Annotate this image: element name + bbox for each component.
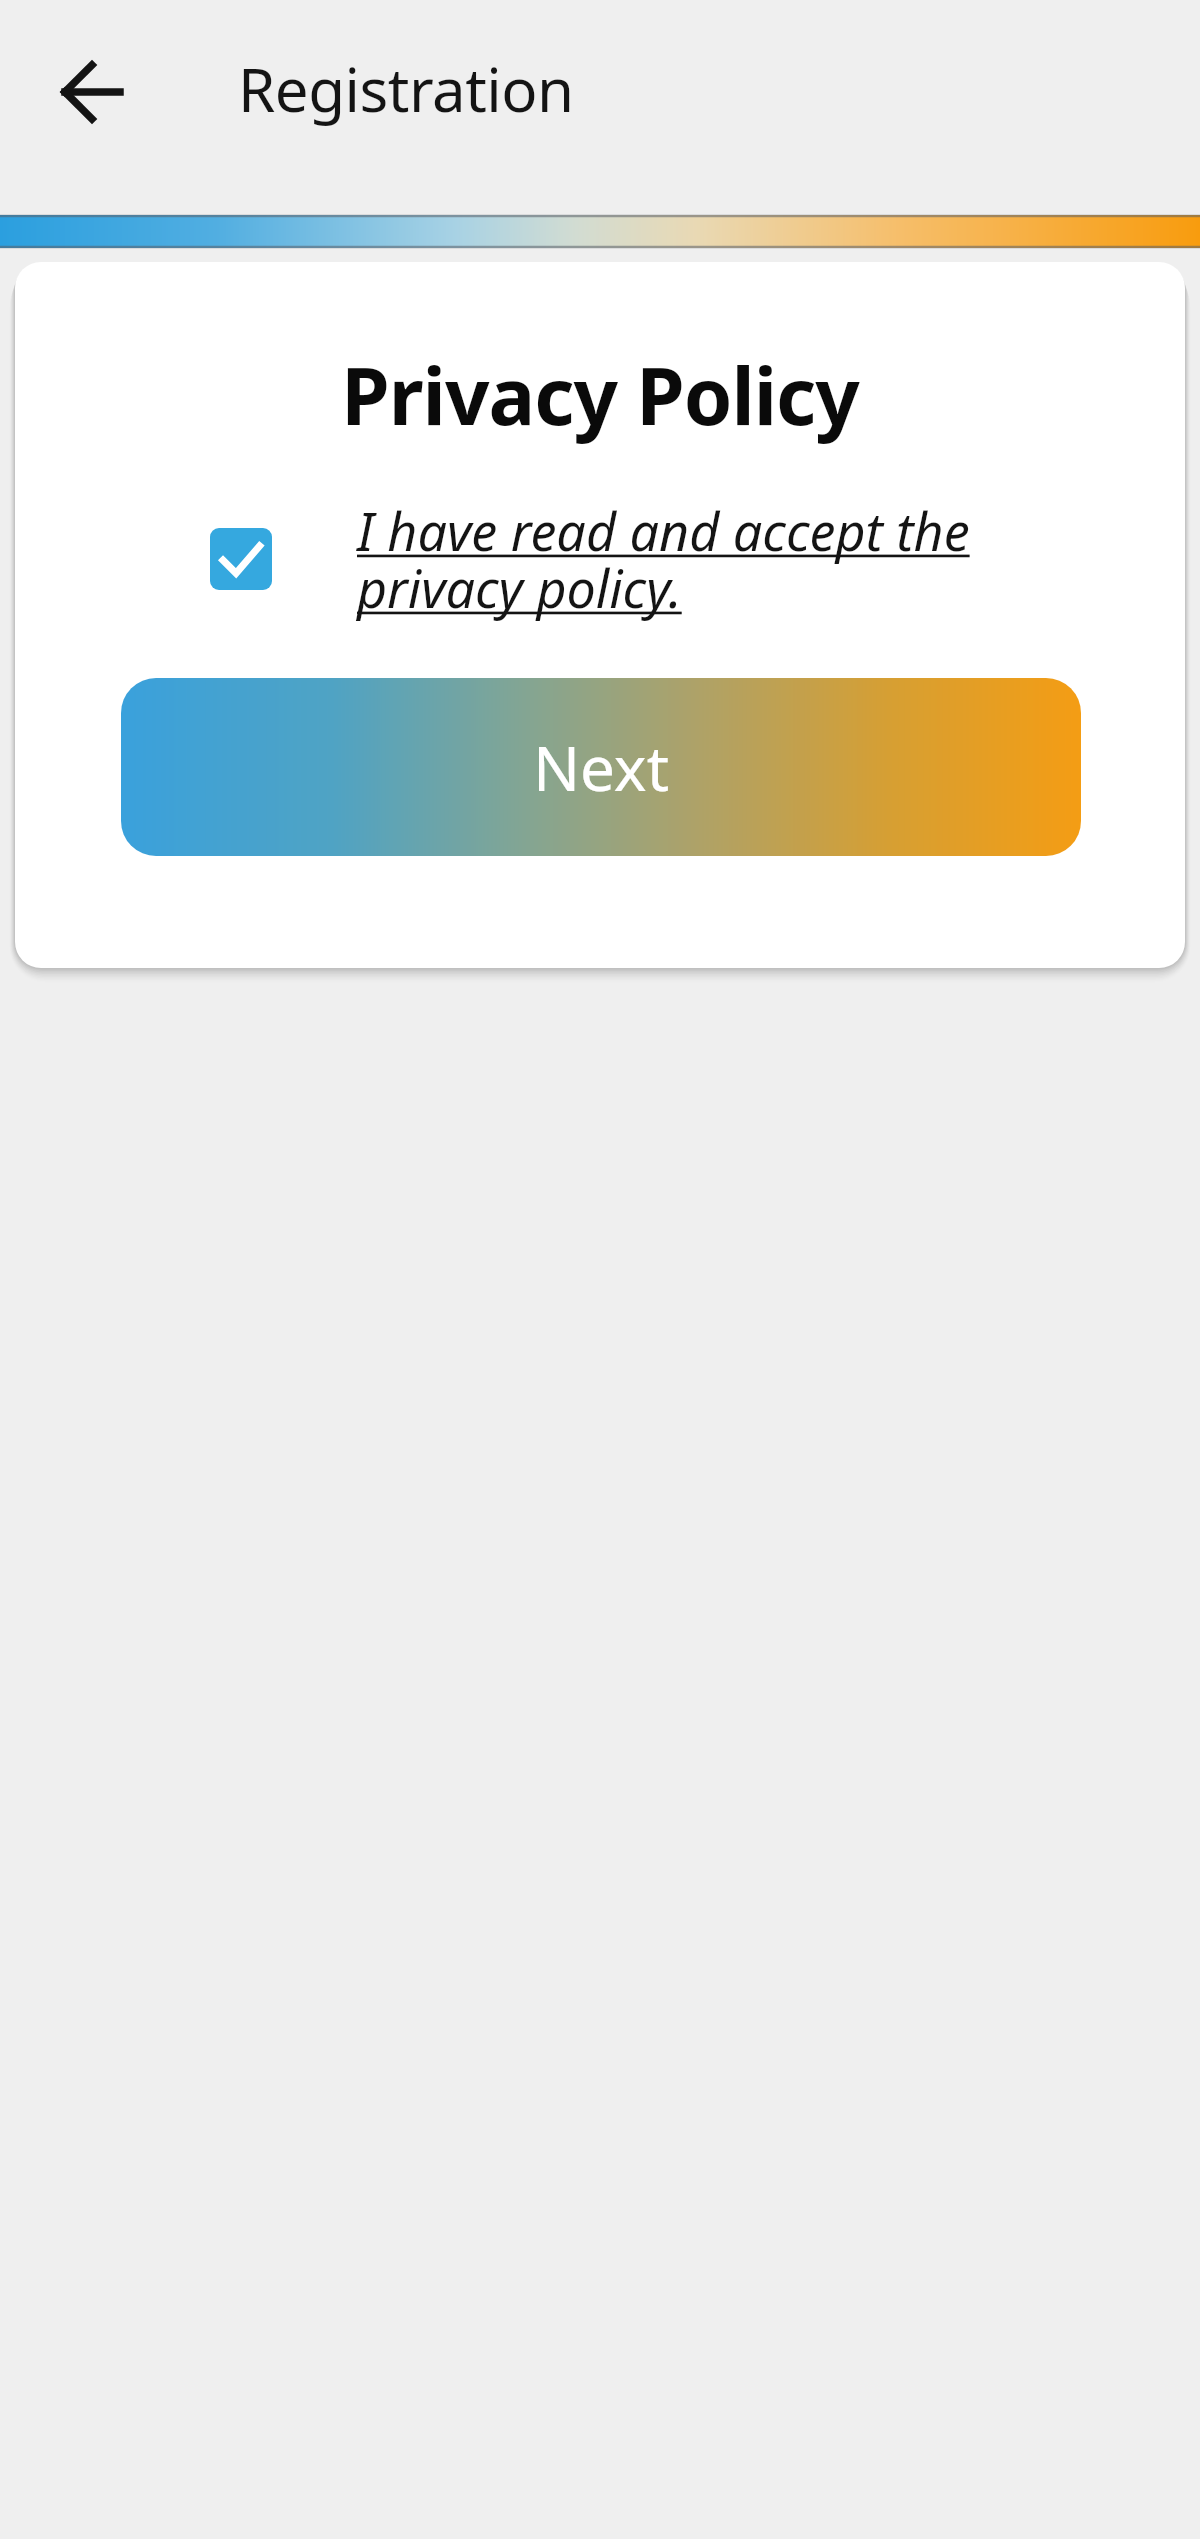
staticText: Registration	[238, 48, 574, 130]
staticText: Next	[533, 725, 670, 809]
button[interactable]: Next	[121, 678, 1081, 856]
button[interactable]: Back	[22, 22, 162, 162]
staticText: Privacy Policy	[15, 342, 1185, 448]
staticText: I have read and accept the privacy polic…	[357, 495, 1125, 623]
button[interactable]: I have read and accept the privacy polic…	[210, 495, 1125, 623]
